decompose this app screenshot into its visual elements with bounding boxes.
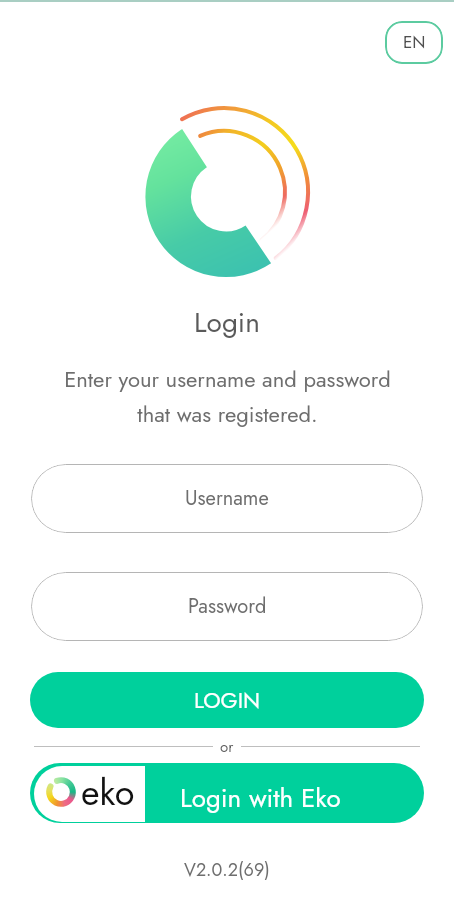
button[interactable]: eko [30, 763, 424, 823]
staticText: LOGIN [194, 684, 261, 716]
staticText: or [220, 736, 234, 757]
button[interactable]: LOGIN [30, 672, 424, 728]
staticText: Username [185, 484, 269, 513]
staticText: EN [403, 30, 426, 55]
staticText: eko [81, 766, 135, 818]
button[interactable]: Change language [385, 21, 443, 64]
staticText: Password [188, 592, 267, 621]
button[interactable]: Password [31, 572, 423, 641]
staticText: Login with Eko [180, 779, 341, 817]
staticText: Login [194, 302, 260, 342]
staticText: V2.0.2(69) [184, 857, 270, 883]
button[interactable]: Username [31, 464, 423, 533]
staticText: Enter your username and password that wa… [64, 363, 391, 430]
